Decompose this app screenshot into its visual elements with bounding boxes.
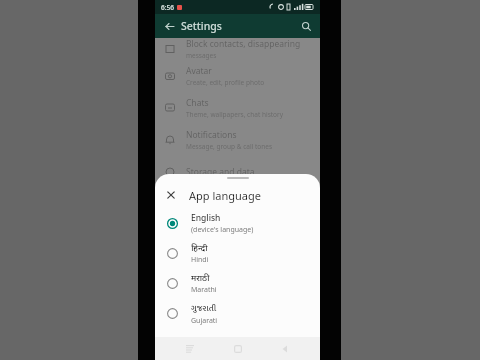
button[interactable]: Recent apps [177, 337, 203, 360]
staticText: (device's language) [191, 225, 254, 235]
staticText: Storage and data [186, 166, 255, 178]
button[interactable]: मराठी [155, 268, 320, 298]
button[interactable]: Back [272, 337, 298, 360]
staticText: Notifications [186, 129, 237, 141]
staticText: Settings [181, 19, 222, 33]
button[interactable]: ગુજરાતી [155, 298, 320, 328]
button[interactable]: Close [164, 188, 178, 202]
staticText: हिन्दी [191, 242, 208, 254]
button[interactable]: Avatar [155, 60, 320, 92]
staticText: Create, edit, profile photo [186, 78, 265, 87]
button[interactable]: Home [225, 337, 251, 360]
staticText: Chats [186, 97, 209, 109]
button[interactable]: हिन्दी [155, 238, 320, 268]
staticText: English [191, 212, 221, 224]
staticText: Avatar [186, 65, 212, 77]
staticText: 6:56 [161, 3, 174, 12]
staticText: Block contacts, disappearing [186, 38, 301, 50]
staticText: messages [186, 51, 217, 60]
button[interactable]: Storage and data [155, 156, 320, 188]
staticText: Theme, wallpapers, chat history [186, 110, 284, 119]
staticText: Marathi [191, 285, 217, 295]
staticText: ગુજરાતી [191, 301, 217, 315]
button[interactable]: Navigate up [162, 19, 176, 33]
button[interactable]: Notifications [155, 124, 320, 156]
staticText: Message, group & call tones [186, 142, 273, 151]
button[interactable]: Chats [155, 92, 320, 124]
staticText: Gujarati [191, 316, 218, 326]
button[interactable]: Block contacts, disappearing [155, 38, 320, 60]
button[interactable]: Search [299, 19, 313, 33]
button[interactable]: English [155, 208, 320, 238]
staticText: मराठी [191, 272, 210, 284]
staticText: Hindi [191, 255, 209, 265]
staticText: App language [189, 188, 261, 203]
